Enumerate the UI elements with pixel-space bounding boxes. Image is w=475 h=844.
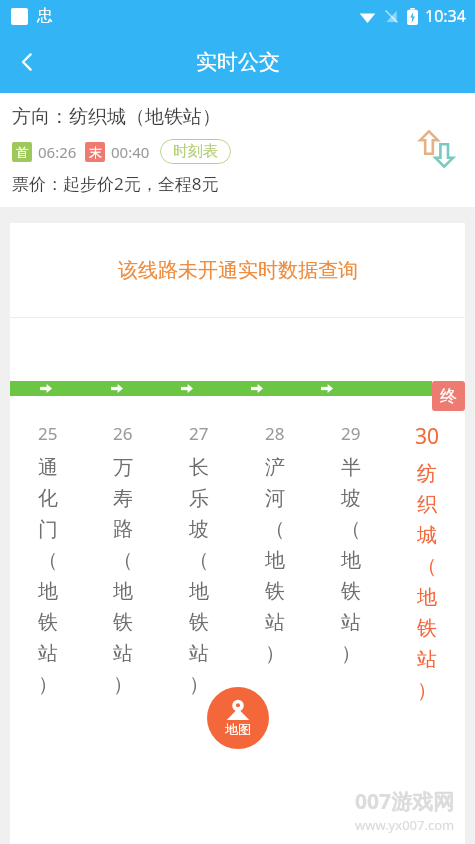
staticText: （ — [189, 548, 209, 573]
staticText: 坡 — [189, 517, 209, 542]
staticText: 通 — [38, 455, 58, 480]
button[interactable]: 29 — [313, 422, 389, 669]
staticText: 铁 — [341, 579, 361, 604]
staticText: 站 — [341, 610, 361, 635]
staticText: ） — [417, 678, 437, 703]
staticText: 地 — [189, 579, 209, 604]
button[interactable]: Back — [0, 35, 54, 89]
staticText: 站 — [189, 641, 209, 666]
staticText: 27 — [189, 422, 209, 445]
staticText: 铁 — [265, 579, 285, 604]
staticText: 终 — [440, 386, 457, 407]
staticText: 门 — [38, 517, 58, 542]
staticText: 长 — [189, 455, 209, 480]
staticText: 寿 — [113, 486, 133, 511]
staticText: ） — [189, 672, 209, 697]
staticText: 忠 — [37, 6, 53, 26]
staticText: 方向：纺织城（地铁站） — [12, 105, 221, 129]
staticText: ） — [341, 641, 361, 666]
staticText: （ — [113, 548, 133, 573]
staticText: ） — [38, 672, 58, 697]
staticText: 站 — [38, 641, 58, 666]
staticText: 地 — [417, 585, 437, 610]
staticText: 站 — [265, 610, 285, 635]
staticText: 29 — [341, 422, 361, 445]
staticText: ） — [113, 672, 133, 697]
staticText: 时刻表 — [173, 142, 218, 161]
staticText: 站 — [417, 647, 437, 672]
staticText: 首 — [16, 144, 29, 160]
button[interactable]: 27 — [161, 422, 237, 700]
staticText: 25 — [38, 422, 58, 445]
staticText: 铁 — [189, 610, 209, 635]
staticText: （ — [38, 548, 58, 573]
staticText: 站 — [113, 641, 133, 666]
staticText: 007游戏网 — [355, 787, 455, 816]
staticText: www.yx007.com — [355, 816, 455, 834]
staticText: 票价：起步价2元，全程8元 — [12, 172, 219, 195]
staticText: 铁 — [38, 610, 58, 635]
staticText: （ — [341, 517, 361, 542]
staticText: ） — [265, 641, 285, 666]
staticText: 河 — [265, 486, 285, 511]
staticText: 路 — [113, 517, 133, 542]
staticText: 万 — [113, 455, 133, 480]
button[interactable]: Map — [207, 687, 269, 749]
staticText: 乐 — [189, 486, 209, 511]
staticText: 10:34 — [425, 5, 466, 27]
staticText: 地 — [265, 548, 285, 573]
button[interactable]: 25 — [10, 422, 85, 700]
staticText: 地图 — [225, 721, 251, 737]
staticText: 28 — [265, 422, 285, 445]
staticText: 地 — [341, 548, 361, 573]
staticText: 实时公交 — [196, 49, 280, 75]
staticText: 30 — [415, 422, 440, 451]
staticText: 坡 — [341, 486, 361, 511]
staticText: 00:40 — [111, 142, 150, 162]
staticText: 织 — [417, 492, 437, 517]
staticText: 地 — [113, 579, 133, 604]
button[interactable]: 28 — [237, 422, 313, 669]
button[interactable]: 26 — [85, 422, 161, 700]
button[interactable]: Switch direction — [417, 129, 457, 169]
staticText: 地 — [38, 579, 58, 604]
staticText: 末 — [89, 144, 102, 160]
staticText: 城 — [417, 523, 437, 548]
staticText: 纺 — [417, 461, 437, 486]
button[interactable]: 30 — [389, 422, 465, 706]
staticText: 该线路未开通实时数据查询 — [118, 258, 358, 283]
button[interactable]: 时刻表 — [160, 139, 231, 164]
staticText: 化 — [38, 486, 58, 511]
staticText: 半 — [341, 455, 361, 480]
staticText: 26 — [113, 422, 133, 445]
staticText: 铁 — [113, 610, 133, 635]
staticText: 浐 — [265, 455, 285, 480]
staticText: 06:26 — [38, 142, 77, 162]
staticText: 铁 — [417, 616, 437, 641]
staticText: （ — [417, 554, 437, 579]
staticText: （ — [265, 517, 285, 542]
